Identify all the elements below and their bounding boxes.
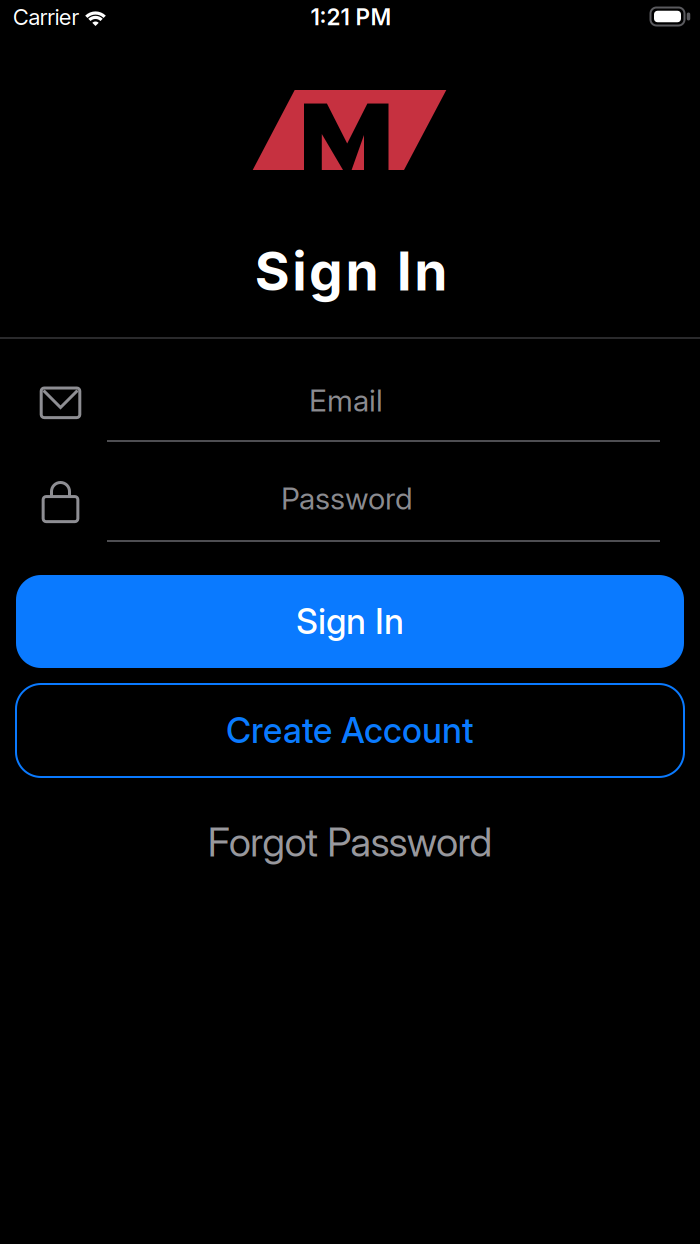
staticText: Create Account — [226, 709, 474, 751]
button[interactable]: Sign In — [16, 575, 684, 668]
staticText: Sign In — [255, 239, 447, 303]
staticText: Email — [309, 382, 383, 419]
staticText: Forgot Password — [208, 818, 492, 866]
staticText: 1:21 PM — [310, 3, 391, 31]
button[interactable]: Forgot Password — [208, 818, 492, 866]
button[interactable]: Create Account — [16, 684, 684, 777]
staticText: Sign In — [296, 600, 404, 642]
staticText: Carrier — [13, 4, 79, 30]
staticText: Password — [281, 480, 413, 517]
